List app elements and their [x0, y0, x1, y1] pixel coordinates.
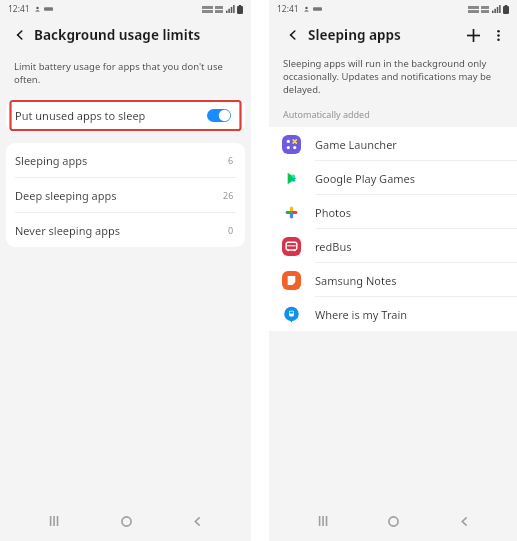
- button[interactable]: Back: [8, 23, 32, 47]
- staticText: Samsung Notes: [315, 273, 397, 288]
- button[interactable]: Put unused apps to sleep toggle: [207, 109, 231, 122]
- staticText: Game Launcher: [315, 137, 397, 152]
- button[interactable]: Recents: [37, 504, 71, 538]
- button[interactable]: Game Launcher: [269, 127, 517, 161]
- staticText: Google Play Games: [315, 171, 416, 186]
- button[interactable]: redBus: [269, 229, 517, 263]
- button[interactable]: Back: [180, 504, 214, 538]
- staticText: 12:41: [8, 3, 30, 15]
- button[interactable]: Samsung Notes: [269, 263, 517, 297]
- staticText: Automatically added: [283, 108, 370, 120]
- button[interactable]: Never sleeping apps: [6, 213, 245, 247]
- button[interactable]: Photos: [269, 195, 517, 229]
- staticText: redBus: [315, 239, 352, 254]
- button[interactable]: Sleeping apps: [6, 143, 245, 177]
- button[interactable]: More options: [487, 24, 509, 46]
- button[interactable]: Home: [376, 504, 410, 538]
- staticText: Put unused apps to sleep: [15, 108, 146, 123]
- button[interactable]: Add: [460, 22, 486, 48]
- button[interactable]: Where is my Train: [269, 297, 517, 331]
- staticText: Deep sleeping apps: [15, 188, 117, 203]
- staticText: Sleeping apps: [308, 26, 401, 44]
- staticText: 6: [228, 154, 234, 166]
- staticText: Background usage limits: [34, 26, 201, 44]
- staticText: Where is my Train: [315, 307, 408, 322]
- staticText: 26: [223, 189, 234, 201]
- button[interactable]: Google Play Games: [269, 161, 517, 195]
- staticText: Photos: [315, 205, 352, 220]
- staticText: 0: [228, 224, 234, 236]
- button[interactable]: Back: [447, 504, 481, 538]
- button[interactable]: Recents: [306, 504, 340, 538]
- button[interactable]: Deep sleeping apps: [6, 178, 245, 212]
- staticText: Sleeping apps will run in the background…: [283, 57, 501, 96]
- button[interactable]: Back: [281, 23, 305, 47]
- button[interactable]: Put unused apps to sleep: [6, 99, 245, 132]
- staticText: Sleeping apps: [15, 153, 88, 168]
- staticText: 12:41: [277, 3, 299, 15]
- staticText: Limit battery usage for apps that you do…: [14, 60, 237, 86]
- button[interactable]: Home: [109, 504, 143, 538]
- staticText: Never sleeping apps: [15, 223, 121, 238]
